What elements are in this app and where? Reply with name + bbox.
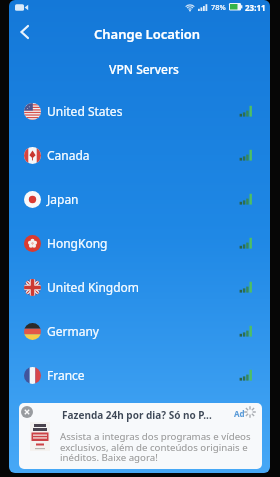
button[interactable]	[21, 406, 33, 418]
staticText: United Kingdom	[47, 279, 140, 295]
staticText: Japan	[47, 191, 79, 207]
button[interactable]: France	[9, 353, 270, 397]
staticText: United States	[47, 103, 123, 119]
button[interactable]: HongKong	[9, 221, 270, 265]
staticText: Canada	[47, 147, 90, 163]
staticText: 23:11	[245, 2, 266, 13]
button[interactable]: Canada	[9, 133, 270, 177]
staticText: HongKong	[47, 235, 108, 251]
button[interactable]: Fazenda 24h por dia? Só no P...	[19, 403, 262, 469]
button[interactable]: United Kingdom	[9, 265, 270, 309]
staticText: Ad	[234, 408, 245, 419]
staticText: France	[47, 367, 85, 383]
staticText: Change Location	[94, 25, 201, 42]
staticText: 78%	[211, 2, 226, 12]
staticText: Fazenda 24h por dia? Só no P...	[62, 408, 230, 422]
button[interactable]: Japan	[9, 177, 270, 221]
staticText: Germany	[47, 323, 99, 339]
staticText: Assista a integras dos programas e vídeo…	[60, 430, 251, 464]
button[interactable]: United States	[9, 89, 270, 133]
button[interactable]	[17, 22, 37, 42]
staticText: VPN Servers	[109, 61, 179, 77]
button[interactable]: Germany	[9, 309, 270, 353]
